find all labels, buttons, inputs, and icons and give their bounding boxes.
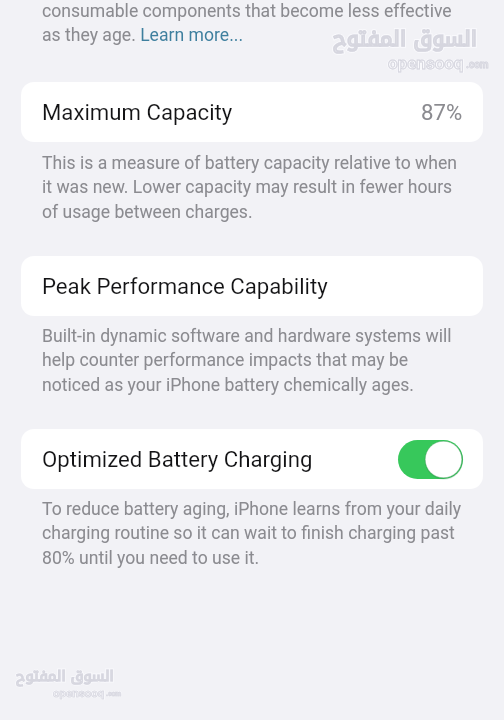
staticText: .com — [466, 59, 489, 71]
staticText: Optimized Battery Charging — [42, 446, 313, 472]
staticText: Peak Performance Capability — [42, 273, 328, 299]
staticText: opensooq — [53, 686, 105, 700]
button[interactable]: Maximum Capacity — [21, 82, 483, 142]
staticText: السوق المفتوح — [16, 662, 114, 690]
staticText: This is a measure of battery capacity re… — [42, 153, 457, 223]
staticText: consumable components that become less e… — [42, 1, 452, 46]
staticText: 87% — [421, 99, 463, 125]
staticText: السوق المفتوح — [333, 18, 477, 59]
staticText: opensooq — [388, 53, 464, 73]
button[interactable]: Optimized Battery Charging — [398, 440, 463, 479]
button[interactable] — [141, 23, 240, 45]
staticText: .com — [466, 59, 489, 71]
staticText: .com — [106, 690, 122, 698]
staticText: السوق المفتوح — [16, 662, 114, 690]
staticText: .com — [106, 690, 122, 698]
staticText: السوق المفتوح — [333, 18, 477, 59]
staticText: opensooq — [388, 53, 464, 73]
staticText: Maximum Capacity — [42, 99, 233, 125]
staticText: Built-in dynamic software and hardware s… — [42, 326, 452, 396]
button[interactable]: Optimized Battery Charging — [21, 429, 483, 489]
staticText: To reduce battery aging, iPhone learns f… — [42, 499, 462, 569]
button[interactable]: Peak Performance Capability — [21, 256, 483, 316]
staticText: opensooq — [53, 686, 105, 700]
